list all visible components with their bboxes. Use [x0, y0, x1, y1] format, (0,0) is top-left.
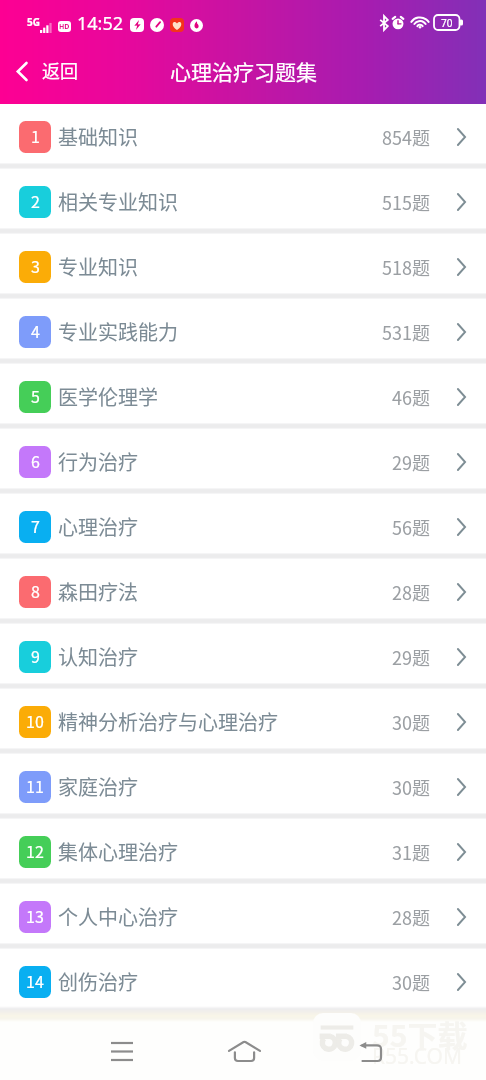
staticText: 专业知识 — [58, 252, 138, 281]
button[interactable]: Menu — [61, 1022, 183, 1080]
button[interactable]: 14 — [0, 949, 486, 1008]
staticText: 创伤治疗 — [58, 967, 138, 996]
staticText: 家庭治疗 — [58, 772, 138, 801]
staticText: 14:52 — [77, 11, 124, 36]
staticText: 70 — [441, 16, 453, 30]
button[interactable]: Back — [305, 1022, 427, 1080]
staticText: 基础知识 — [58, 122, 138, 151]
staticText: 13 — [26, 904, 44, 927]
staticText: 心理治疗 — [58, 512, 138, 541]
staticText: 10 — [26, 709, 44, 732]
staticText: 专业实践能力 — [58, 317, 178, 346]
button[interactable]: 9 — [0, 624, 486, 683]
staticText: 11 — [26, 774, 44, 797]
button[interactable]: 4 — [0, 299, 486, 358]
staticText: 28题 — [392, 579, 430, 605]
staticText: 29题 — [392, 644, 430, 670]
staticText: 认知治疗 — [58, 642, 138, 671]
button[interactable]: 12 — [0, 819, 486, 878]
staticText: 12 — [26, 839, 44, 862]
staticText: 14 — [26, 969, 44, 992]
staticText: 6 — [31, 449, 40, 472]
button[interactable]: 10 — [0, 689, 486, 748]
staticText: 5G — [27, 15, 40, 29]
staticText: 7 — [31, 514, 40, 537]
staticText: 518题 — [382, 254, 430, 280]
button[interactable]: 1 — [0, 104, 486, 163]
staticText: 4 — [31, 319, 40, 342]
staticText: 8 — [31, 579, 40, 602]
staticText: 森田疗法 — [58, 577, 138, 606]
staticText: 相关专业知识 — [58, 187, 178, 216]
staticText: 5 — [31, 384, 40, 407]
staticText: 医学伦理学 — [58, 382, 158, 411]
staticText: 1 — [31, 124, 40, 147]
staticText: 28题 — [392, 904, 430, 930]
staticText: 精神分析治疗与心理治疗 — [58, 707, 278, 736]
button[interactable]: Home — [183, 1022, 305, 1080]
staticText: 个人中心治疗 — [58, 902, 178, 931]
staticText: R55.COM — [372, 1042, 462, 1071]
staticText: 854题 — [382, 124, 430, 150]
button[interactable]: 5 — [0, 364, 486, 423]
button[interactable]: 7 — [0, 494, 486, 553]
button[interactable]: 8 — [0, 559, 486, 618]
staticText: 返回 — [42, 57, 78, 83]
button[interactable]: 6 — [0, 429, 486, 488]
staticText: 29题 — [392, 449, 430, 475]
staticText: 9 — [31, 644, 40, 667]
staticText: 2 — [31, 189, 40, 212]
staticText: HD — [59, 22, 70, 32]
staticText: 行为治疗 — [58, 447, 138, 476]
button[interactable]: 13 — [0, 884, 486, 943]
staticText: 56题 — [392, 514, 430, 540]
button[interactable]: 3 — [0, 234, 486, 293]
button[interactable]: 2 — [0, 169, 486, 228]
staticText: 30题 — [392, 969, 430, 995]
staticText: 46题 — [392, 384, 430, 410]
staticText: 55下载 — [372, 1012, 468, 1055]
staticText: 30题 — [392, 774, 430, 800]
staticText: 515题 — [382, 189, 430, 215]
staticText: 31题 — [392, 839, 430, 865]
staticText: 心理治疗习题集 — [170, 56, 317, 86]
button[interactable]: 11 — [0, 754, 486, 813]
staticText: 30题 — [392, 709, 430, 735]
staticText: 集体心理治疗 — [58, 837, 178, 866]
button[interactable]: 返回 — [0, 48, 90, 104]
staticText: 531题 — [382, 319, 430, 345]
staticText: 3 — [31, 254, 40, 277]
